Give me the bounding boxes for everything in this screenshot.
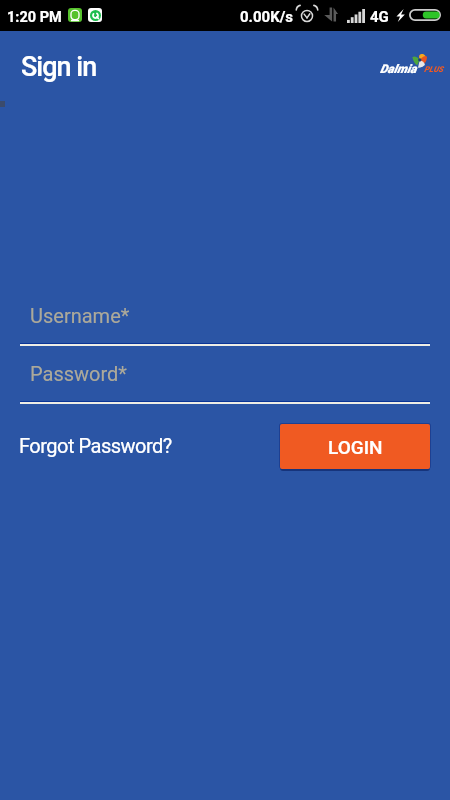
staticText: Password* bbox=[30, 362, 127, 385]
button[interactable]: Username* bbox=[20, 300, 430, 346]
button[interactable]: LOGIN bbox=[280, 424, 430, 469]
staticText: 0.00K/s bbox=[240, 8, 294, 26]
staticText: PLUS bbox=[424, 65, 444, 74]
staticText: LOGIN bbox=[328, 436, 383, 458]
staticText: Forgot Password? bbox=[19, 434, 172, 457]
staticText: 1:20 PM bbox=[7, 9, 62, 26]
button[interactable]: Forgot Password? bbox=[15, 429, 180, 465]
other: Dalmia PLUS logo bbox=[378, 51, 444, 81]
button[interactable]: Password* bbox=[20, 358, 430, 404]
staticText: Dalmia bbox=[380, 62, 417, 76]
staticText: Username* bbox=[30, 304, 130, 327]
staticText: 4G bbox=[370, 8, 389, 26]
staticText: Sign in bbox=[21, 51, 97, 83]
